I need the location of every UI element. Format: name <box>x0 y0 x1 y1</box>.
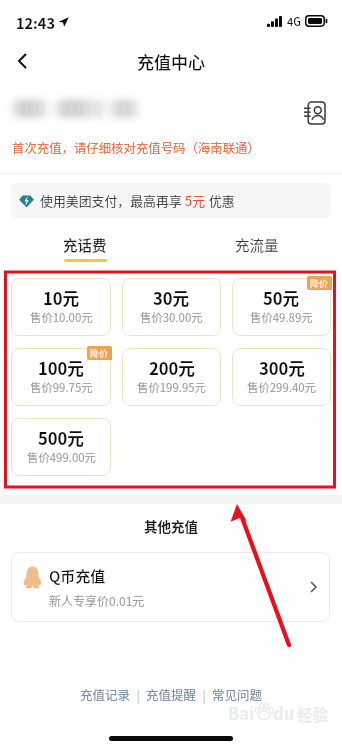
staticText: | <box>131 685 146 703</box>
staticText: 5元 <box>185 191 206 210</box>
staticText: 300元 <box>259 356 305 380</box>
staticText: 50元 <box>263 286 300 310</box>
button[interactable]: 500元 <box>11 418 111 476</box>
button[interactable]: 30元 <box>122 278 221 336</box>
staticText: 30元 <box>153 286 190 310</box>
staticText: Bai <box>228 701 255 725</box>
button[interactable]: 50元 <box>232 278 331 336</box>
button[interactable]: 200元 <box>122 348 221 406</box>
staticText: 售价10.00元 <box>30 309 93 326</box>
staticText: 充话费 <box>63 234 107 255</box>
staticText: 充值中心 <box>137 49 205 74</box>
staticText: | <box>197 685 212 703</box>
staticText: 售价99.75元 <box>30 379 93 396</box>
staticText: 降价 <box>90 347 109 360</box>
staticText: 4G <box>287 13 301 29</box>
button[interactable]: 充话费 <box>41 228 129 268</box>
staticText: 其他充值 <box>0 516 342 536</box>
staticText: 500元 <box>38 426 84 450</box>
staticText: 售价30.00元 <box>140 309 203 326</box>
button[interactable]: 300元 <box>232 348 331 406</box>
staticText: 降价 <box>310 277 329 290</box>
staticText: 100元 <box>38 356 84 380</box>
staticText: 200元 <box>149 356 195 380</box>
button[interactable]: Contacts <box>296 95 334 131</box>
button[interactable]: Q币充值 <box>11 552 330 622</box>
staticText: 经验 <box>297 703 329 725</box>
staticText: du <box>273 701 295 725</box>
staticText: 10元 <box>43 286 80 310</box>
button[interactable]: 100元 <box>11 348 111 406</box>
staticText: Q币充值 <box>49 565 106 587</box>
button[interactable]: 充值记录 <box>80 685 131 703</box>
staticText: 充流量 <box>235 234 279 255</box>
staticText: 优惠 <box>206 191 235 210</box>
staticText: 售价499.00元 <box>27 449 96 466</box>
staticText: 售价199.95元 <box>137 379 206 396</box>
staticText: 售价299.40元 <box>247 379 316 396</box>
button[interactable]: 常见问题 <box>212 685 263 703</box>
button[interactable]: 10元 <box>11 278 111 336</box>
button[interactable]: 充流量 <box>213 228 301 268</box>
button[interactable]: 使用美团支付，最高再享 <box>11 183 331 218</box>
staticText: 新人专享价0.01元 <box>49 592 145 609</box>
staticText: 售价49.89元 <box>250 309 313 326</box>
button[interactable]: Back <box>0 41 44 81</box>
button[interactable]: 充值提醒 <box>146 685 197 703</box>
staticText: 12:43 <box>16 12 55 30</box>
staticText: 首次充值，请仔细核对充值号码（海南联通） <box>12 139 260 157</box>
staticText: 使用美团支付，最高再享 <box>40 191 185 210</box>
